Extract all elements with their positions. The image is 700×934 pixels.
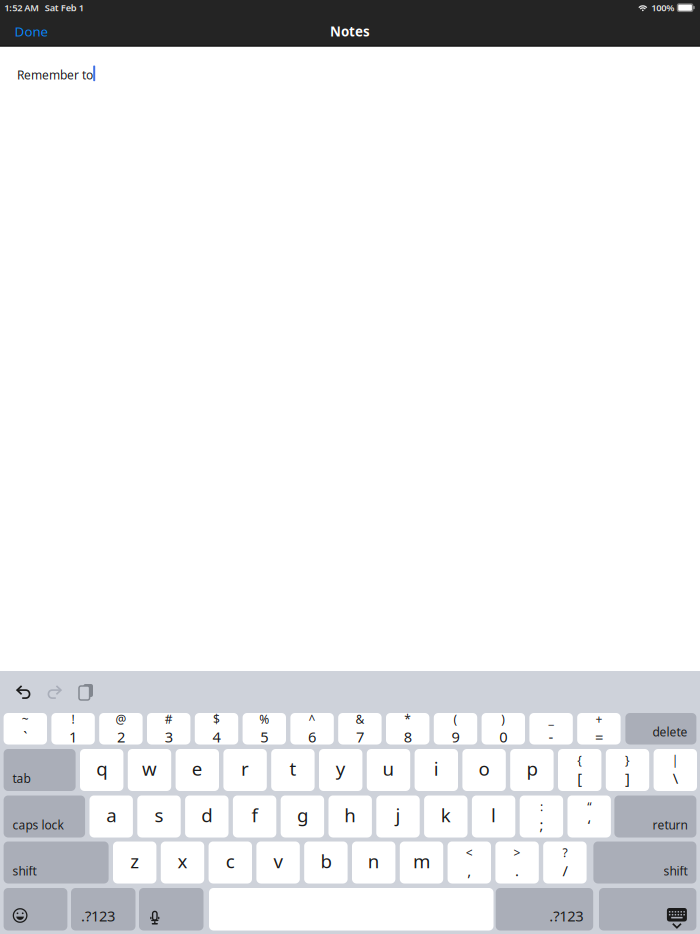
button[interactable]: b xyxy=(304,841,348,883)
button[interactable]: 4 xyxy=(195,713,238,744)
button[interactable]: o xyxy=(462,749,506,791)
staticText: Sat Feb 1 xyxy=(45,2,84,14)
button[interactable]: = xyxy=(577,713,621,744)
staticText: 5 xyxy=(260,727,268,746)
button[interactable]: 1 xyxy=(51,713,95,744)
button[interactable]: r xyxy=(223,749,267,791)
button[interactable]: tab xyxy=(4,749,76,791)
button[interactable]: ` xyxy=(4,713,47,744)
button[interactable]: \ xyxy=(654,749,697,791)
button[interactable]: 5 xyxy=(243,713,286,744)
staticText: c xyxy=(226,849,235,873)
button[interactable]: delete xyxy=(625,713,696,744)
staticText: n xyxy=(368,849,380,873)
staticText: d xyxy=(201,803,212,827)
staticText: w xyxy=(142,756,157,781)
button[interactable]: Emoji xyxy=(4,888,67,930)
button[interactable]: ‘ xyxy=(567,795,611,837)
staticText: < xyxy=(466,845,473,861)
button[interactable]: - xyxy=(529,713,573,744)
button[interactable]: . xyxy=(495,841,539,883)
button[interactable]: , xyxy=(448,841,491,883)
staticText: @ xyxy=(115,711,126,727)
button[interactable]: m xyxy=(400,841,443,883)
staticText: r xyxy=(241,756,249,781)
button[interactable]: return xyxy=(614,795,696,837)
button[interactable]: c xyxy=(209,841,252,883)
button[interactable]: n xyxy=(352,841,395,883)
staticText: > xyxy=(514,845,521,861)
staticText: a xyxy=(106,803,116,827)
button[interactable]: y xyxy=(319,749,362,791)
staticText: v xyxy=(274,849,283,873)
button[interactable]: t xyxy=(271,749,315,791)
button[interactable]: d xyxy=(185,795,228,837)
button[interactable]: / xyxy=(543,841,587,883)
staticText: “ xyxy=(587,799,591,815)
button[interactable]: ] xyxy=(606,749,649,791)
staticText: Done xyxy=(15,22,49,40)
button[interactable]: w xyxy=(128,749,171,791)
staticText: g xyxy=(297,803,308,827)
button[interactable]: z xyxy=(113,841,156,883)
button[interactable]: .?123 xyxy=(71,888,135,930)
button[interactable]: [ xyxy=(558,749,601,791)
button[interactable]: Dictate xyxy=(139,888,203,930)
button[interactable]: x xyxy=(161,841,204,883)
button[interactable]: .?123 xyxy=(496,888,593,930)
button[interactable]: shift xyxy=(4,841,109,883)
staticText: tab xyxy=(12,770,30,786)
button[interactable]: u xyxy=(367,749,410,791)
button[interactable]: j xyxy=(376,795,420,837)
button[interactable]: e xyxy=(176,749,219,791)
staticText: + xyxy=(595,711,602,727)
button[interactable]: p xyxy=(510,749,554,791)
staticText: f xyxy=(252,803,258,827)
button[interactable]: 8 xyxy=(386,713,429,744)
staticText: $ xyxy=(213,711,220,727)
staticText: ‘ xyxy=(588,815,591,834)
staticText: p xyxy=(526,756,537,781)
button[interactable]: s xyxy=(137,795,181,837)
button[interactable]: 6 xyxy=(290,713,334,744)
button[interactable]: g xyxy=(281,795,324,837)
button[interactable]: a xyxy=(89,795,133,837)
button[interactable]: i xyxy=(415,749,458,791)
button[interactable]: Hide Keyboard xyxy=(599,888,696,930)
staticText: 0 xyxy=(499,727,507,746)
staticText: 8 xyxy=(404,727,412,746)
button[interactable]: v xyxy=(256,841,300,883)
button[interactable]: 7 xyxy=(338,713,382,744)
button[interactable]: 0 xyxy=(482,713,525,744)
staticText: ] xyxy=(625,768,630,788)
staticText: 7 xyxy=(356,727,364,746)
staticText: 1:52 AM xyxy=(4,2,39,14)
staticText: h xyxy=(344,803,356,827)
button[interactable]: Undo xyxy=(14,682,45,702)
button[interactable]: q xyxy=(80,749,123,791)
button[interactable]: Done xyxy=(0,16,63,47)
staticText: , xyxy=(467,861,471,880)
staticText: % xyxy=(259,711,269,727)
button[interactable]: 9 xyxy=(434,713,477,744)
button[interactable]: ; xyxy=(520,795,563,837)
staticText: - xyxy=(549,727,554,746)
button[interactable]: h xyxy=(328,795,372,837)
button[interactable]: shift xyxy=(593,841,696,883)
staticText: ~ xyxy=(22,711,29,727)
staticText: shift xyxy=(12,863,36,879)
button[interactable]: 2 xyxy=(99,713,143,744)
button[interactable]: k xyxy=(424,795,467,837)
staticText: s xyxy=(154,803,163,827)
button[interactable]: Paste xyxy=(76,682,107,702)
button[interactable]: Redo xyxy=(45,682,76,702)
staticText: y xyxy=(336,756,346,781)
button[interactable]: 3 xyxy=(147,713,190,744)
staticText: ( xyxy=(453,711,457,727)
button[interactable]: caps lock xyxy=(4,795,85,837)
button[interactable]: f xyxy=(233,795,276,837)
staticText: b xyxy=(320,849,331,873)
button[interactable]: l xyxy=(472,795,515,837)
staticText: i xyxy=(434,756,439,781)
